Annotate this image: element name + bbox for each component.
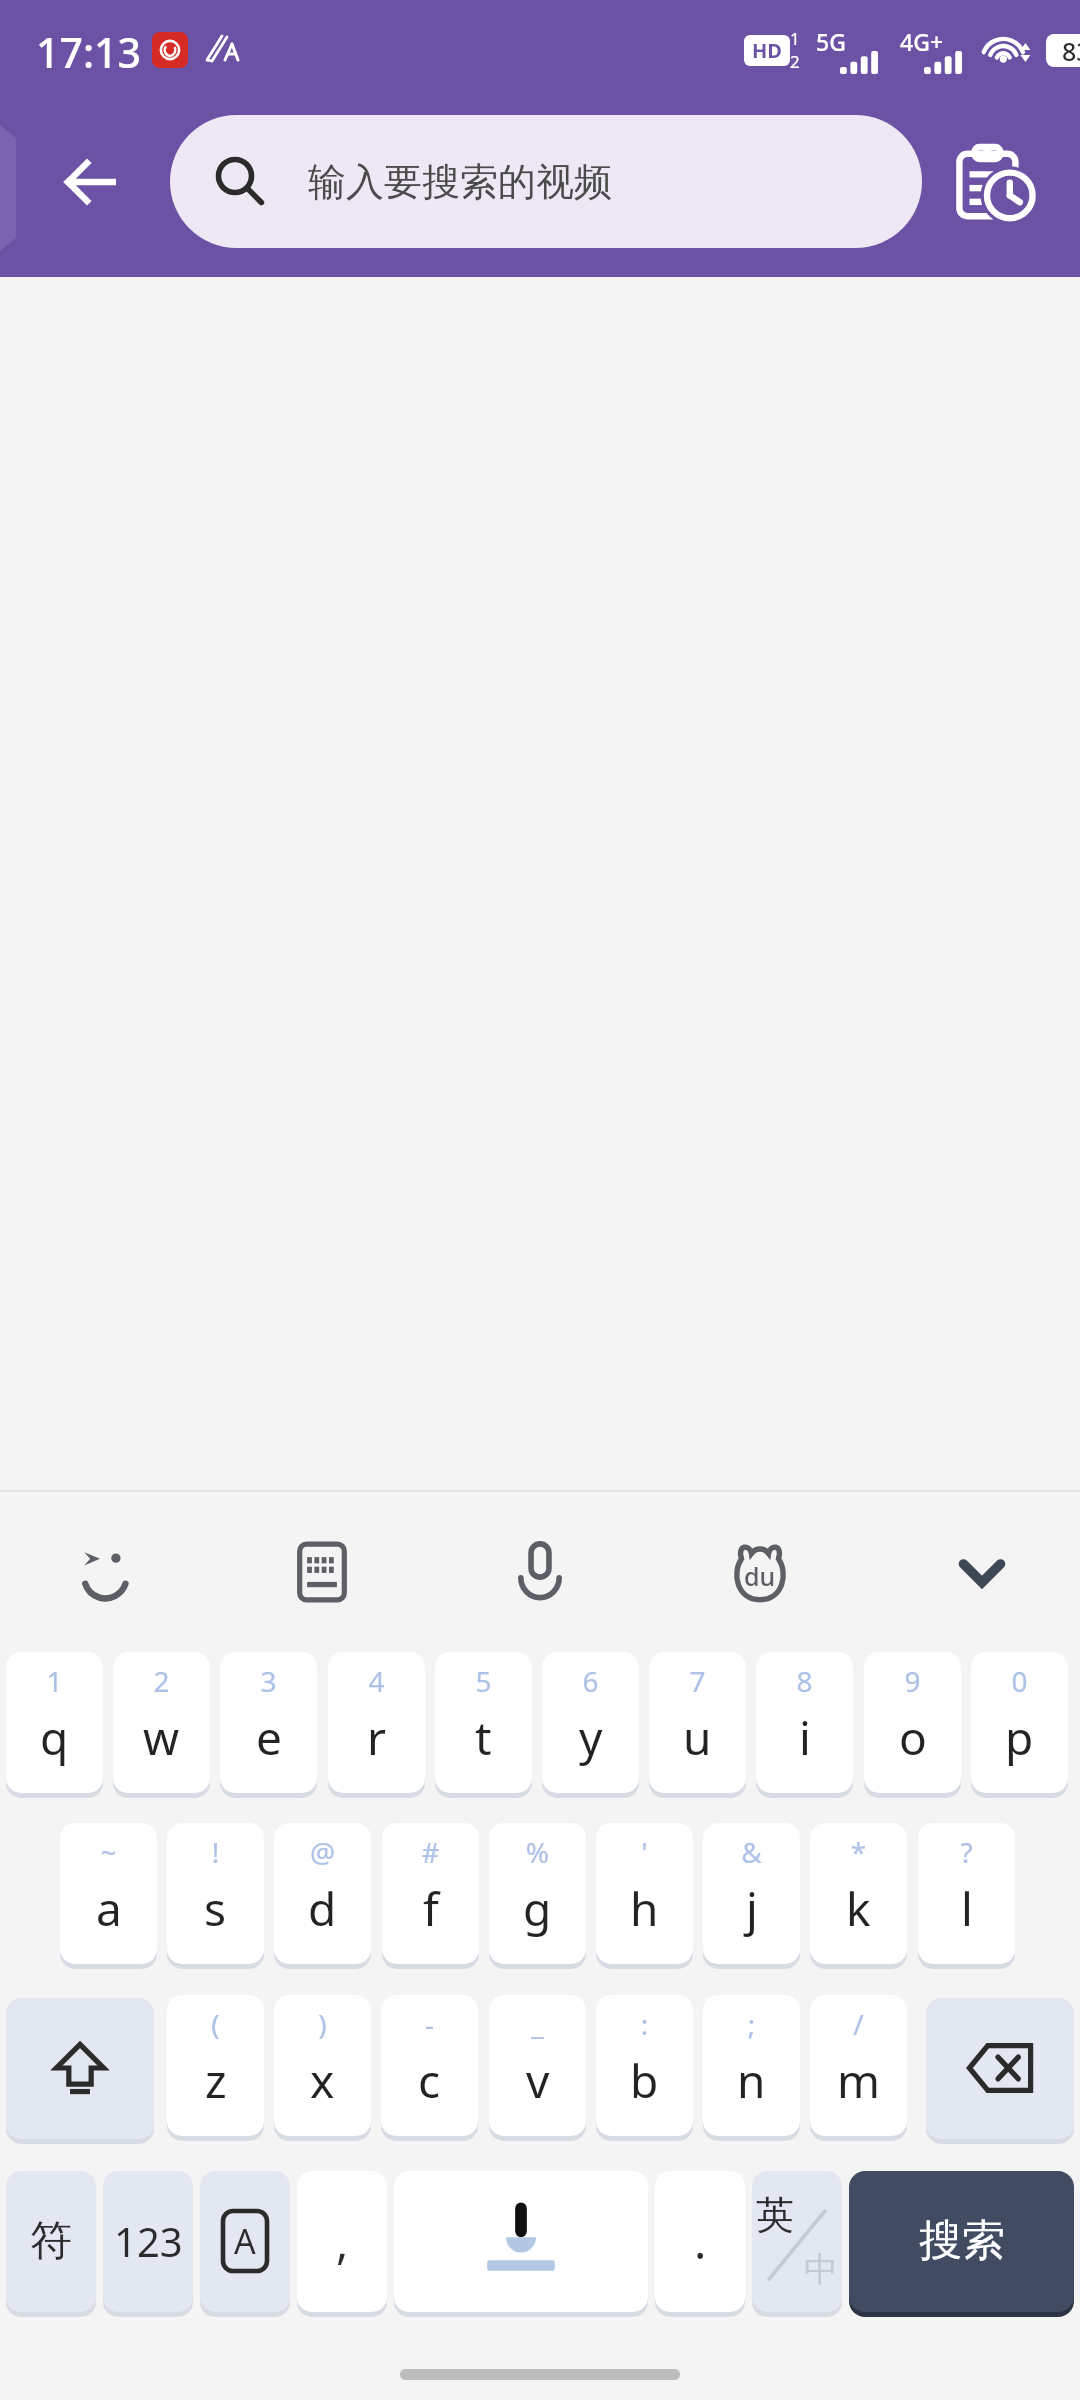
button[interactable]: 8	[756, 1652, 853, 1798]
staticText: 3	[220, 1662, 317, 1700]
button[interactable]: 2	[113, 1652, 210, 1798]
staticText: k	[846, 1877, 871, 1940]
staticText: 2	[790, 50, 800, 73]
staticText: 83	[1062, 34, 1080, 68]
button[interactable]: ;	[703, 1995, 800, 2141]
staticText: ?	[918, 1833, 1015, 1871]
staticText: /	[810, 2005, 907, 2043]
button[interactable]: Shift	[6, 1995, 154, 2141]
button[interactable]: (	[167, 1995, 264, 2141]
button[interactable]: &	[703, 1823, 800, 1969]
button[interactable]: 4	[328, 1652, 425, 1798]
staticText: -	[381, 2005, 478, 2043]
staticText: g	[523, 1877, 552, 1940]
staticText: d	[308, 1877, 337, 1940]
button[interactable]: Hide keyboard	[926, 1516, 1038, 1628]
staticText: x	[310, 2049, 335, 2112]
staticText: 1	[6, 1662, 103, 1700]
button[interactable]: 1	[6, 1652, 103, 1798]
staticText: l	[961, 1877, 973, 1940]
staticText: 英	[756, 2191, 794, 2239]
button[interactable]: Language	[752, 2168, 842, 2314]
staticText: 5	[435, 1662, 532, 1700]
button[interactable]: Period	[655, 2168, 745, 2314]
button[interactable]: Emoji	[50, 1516, 162, 1628]
staticText: &	[703, 1833, 800, 1871]
button[interactable]: Back	[36, 128, 144, 236]
staticText: m	[837, 2049, 881, 2112]
staticText: (	[167, 2005, 264, 2043]
staticText: %	[489, 1833, 586, 1871]
staticText: w	[143, 1706, 180, 1769]
button[interactable]: Numbers	[103, 2168, 193, 2314]
button[interactable]: #	[382, 1823, 479, 1969]
staticText: 2	[113, 1662, 210, 1700]
staticText: p	[1005, 1706, 1034, 1769]
staticText: s	[204, 1877, 227, 1940]
button[interactable]: -	[381, 1995, 478, 2141]
staticText: t	[475, 1706, 492, 1769]
staticText: h	[630, 1877, 659, 1940]
button[interactable]: ?	[918, 1823, 1015, 1969]
staticText: 0	[971, 1662, 1068, 1700]
button[interactable]: %	[489, 1823, 586, 1969]
staticText: '	[596, 1833, 693, 1871]
button[interactable]: 6	[542, 1652, 639, 1798]
button[interactable]: 9	[864, 1652, 961, 1798]
button[interactable]: 7	[649, 1652, 746, 1798]
button[interactable]: Space	[394, 2168, 648, 2314]
staticText: 17:13	[36, 24, 141, 80]
staticText: A	[234, 2218, 256, 2264]
staticText: e	[256, 1706, 282, 1769]
staticText: v	[526, 2049, 550, 2112]
staticText: HD	[752, 37, 782, 64]
staticText: ,	[336, 2210, 349, 2273]
button[interactable]: 输入要搜索的视频	[170, 115, 922, 248]
button[interactable]: Input method	[200, 2168, 290, 2314]
staticText: !	[167, 1833, 264, 1871]
button[interactable]: Symbols	[6, 2168, 96, 2314]
button[interactable]: !	[167, 1823, 264, 1969]
button[interactable]: _	[489, 1995, 586, 2141]
staticText: n	[737, 2049, 766, 2112]
staticText: #	[382, 1833, 479, 1871]
staticText: i	[799, 1706, 811, 1769]
staticText: u	[683, 1706, 712, 1769]
button[interactable]: Backspace	[926, 1995, 1074, 2141]
button[interactable]: @	[274, 1823, 371, 1969]
staticText: du	[744, 1559, 776, 1593]
button[interactable]: 搜索	[849, 2168, 1074, 2314]
staticText: 输入要搜索的视频	[308, 158, 612, 206]
button[interactable]: Comma	[297, 2168, 387, 2314]
button[interactable]: /	[810, 1995, 907, 2141]
button[interactable]: :	[596, 1995, 693, 2141]
staticText: 9	[864, 1662, 961, 1700]
button[interactable]: Keyboard layout	[266, 1516, 378, 1628]
staticText: b	[630, 2049, 659, 2112]
staticText: y	[579, 1706, 603, 1769]
staticText: 4	[328, 1662, 425, 1700]
button[interactable]: 0	[971, 1652, 1068, 1798]
button[interactable]: 3	[220, 1652, 317, 1798]
staticText: o	[899, 1706, 927, 1769]
staticText: 5G	[816, 26, 846, 57]
button[interactable]: '	[596, 1823, 693, 1969]
staticText: ;	[703, 2005, 800, 2043]
staticText: 1	[790, 27, 800, 50]
button[interactable]: 5	[435, 1652, 532, 1798]
staticText: f	[423, 1877, 439, 1940]
staticText: 符	[30, 2215, 72, 2268]
staticText: 6	[542, 1662, 639, 1700]
button[interactable]: Voice input	[484, 1516, 596, 1628]
button[interactable]: Baidu input	[704, 1516, 816, 1628]
staticText: ~	[60, 1833, 157, 1871]
button[interactable]: *	[810, 1823, 907, 1969]
staticText: .	[694, 2210, 707, 2273]
staticText: q	[40, 1706, 69, 1769]
staticText: z	[205, 2049, 227, 2112]
button[interactable]: ~	[60, 1823, 157, 1969]
button[interactable]: Search history	[938, 122, 1056, 240]
button[interactable]: )	[274, 1995, 371, 2141]
staticText: j	[746, 1877, 758, 1940]
staticText: a	[96, 1877, 122, 1940]
